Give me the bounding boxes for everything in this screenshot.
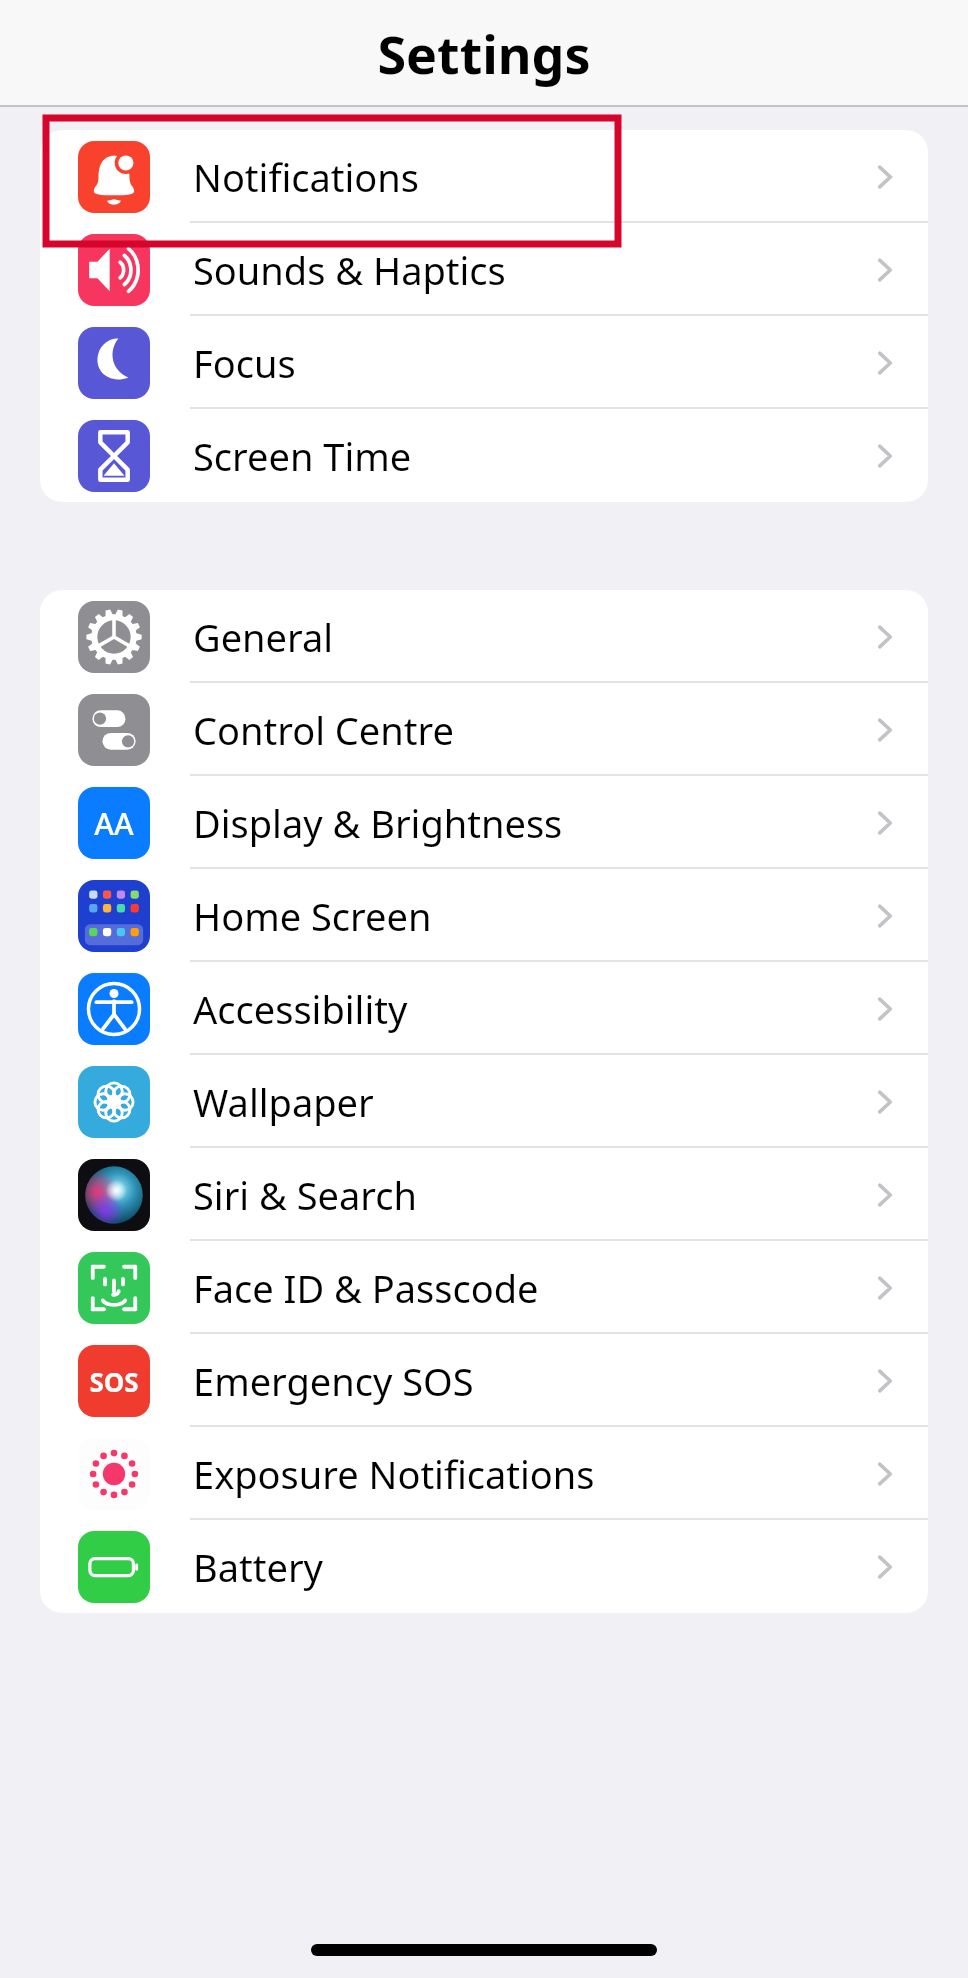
button[interactable]: Battery [40, 1520, 928, 1613]
other: Home indicator [311, 1944, 657, 1956]
staticText: Display & Brightness [193, 797, 866, 849]
button[interactable]: Screen Time [40, 409, 928, 502]
button[interactable]: Wallpaper [40, 1055, 928, 1148]
staticText: Control Centre [193, 704, 866, 756]
button[interactable]: Notifications [40, 130, 928, 223]
button[interactable]: AA [40, 776, 928, 869]
button[interactable]: Exposure Notifications [40, 1427, 928, 1520]
staticText: Settings [0, 18, 968, 89]
staticText: Home Screen [193, 890, 866, 942]
staticText: Sounds & Haptics [193, 244, 866, 296]
button[interactable]: Focus [40, 316, 928, 409]
button[interactable]: Control Centre [40, 683, 928, 776]
staticText: Emergency SOS [193, 1355, 866, 1407]
staticText: AA [94, 803, 134, 844]
button[interactable]: Siri & Search [40, 1148, 928, 1241]
button[interactable]: SOS [40, 1334, 928, 1427]
button[interactable]: Sounds & Haptics [40, 223, 928, 316]
staticText: Battery [193, 1541, 866, 1593]
staticText: Screen Time [193, 430, 866, 482]
staticText: Exposure Notifications [193, 1448, 866, 1500]
button[interactable]: Home Screen [40, 869, 928, 962]
staticText: Accessibility [193, 983, 866, 1035]
button[interactable]: Accessibility [40, 962, 928, 1055]
staticText: Wallpaper [193, 1076, 866, 1128]
staticText: Siri & Search [193, 1169, 866, 1221]
button[interactable]: Face ID & Passcode [40, 1241, 928, 1334]
button[interactable]: General [40, 590, 928, 683]
staticText: Face ID & Passcode [193, 1262, 866, 1314]
staticText: Focus [193, 337, 866, 389]
staticText: SOS [89, 1364, 139, 1399]
staticText: General [193, 611, 866, 663]
staticText: Notifications [193, 151, 866, 203]
